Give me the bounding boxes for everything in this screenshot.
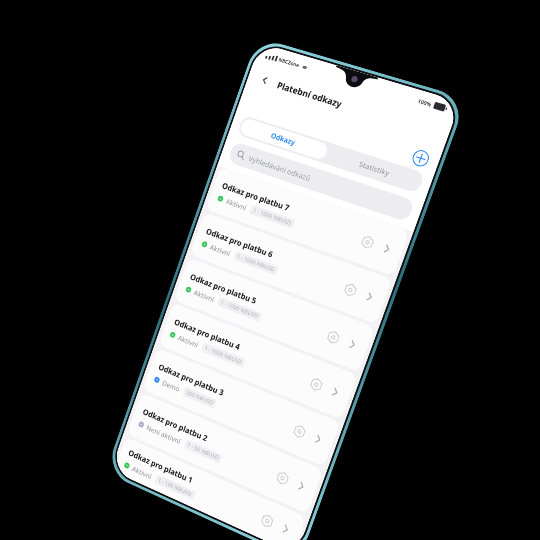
staticText: Aktivní [131,464,153,481]
button[interactable]: Open details [274,517,296,540]
button[interactable]: Vyhledávání odkazů [227,141,415,223]
staticText: 100% [417,97,432,108]
button[interactable]: Odkaz pro platbu 4 [158,303,357,420]
staticText: Odkaz pro platbu 5 [189,271,259,306]
button[interactable]: Back [254,70,275,91]
button[interactable]: Show QR code [304,371,328,397]
button[interactable]: Odkaz pro platbu 3 [142,348,340,467]
staticText: Demo [161,378,181,394]
button[interactable]: Open details [341,332,363,356]
button[interactable]: Odkaz pro platbu 1 [114,437,306,540]
button[interactable]: Show QR code [338,277,363,302]
staticText: Není aktivní [145,422,183,446]
staticText: Odkaz pro platbu 7 [221,180,292,213]
button[interactable]: Odkazy [239,117,329,161]
button[interactable]: Show QR code [287,418,311,444]
button[interactable]: Open details [358,285,381,308]
staticText: Statistiky [358,159,391,178]
button[interactable]: Show QR code [270,465,294,490]
staticText: 1 - 1000 NBUSD [203,344,243,366]
staticText: Aktivní [193,287,216,304]
button[interactable]: Show QR code [321,324,345,349]
button[interactable]: Open details [307,427,329,450]
staticText: Platební odkazy [275,79,344,110]
button[interactable]: Odkaz pro platbu 2 [127,392,323,514]
button[interactable]: Odkaz pro platbu 6 [190,212,392,324]
staticText: 1 - 1000 NBUSD [236,253,276,274]
staticText: 1 - 50 NBUSD [186,441,220,462]
staticText: NBCZone [278,56,301,68]
staticText: Aktivní [225,196,248,212]
button[interactable]: Open details [290,474,312,497]
button[interactable]: Show QR code [355,229,380,254]
button[interactable]: Statistiky [324,143,425,194]
staticText: Odkazy [270,130,297,147]
staticText: Odkaz pro platbu 1 [127,447,195,485]
button[interactable]: Add payment link [410,148,432,169]
button[interactable]: Open details [375,237,398,260]
button[interactable]: Odkaz pro platbu 5 [174,257,375,372]
staticText: Aktivní [209,242,232,258]
staticText: Vyhledávání odkazů [247,153,312,183]
staticText: 1 - 1000 NBUSD [252,206,293,227]
staticText: 1 - 1000 NBUSD [220,298,259,320]
button[interactable]: Open details [324,380,346,403]
staticText: 200 NBUSD [185,388,214,407]
staticText: Odkaz pro platbu 6 [205,225,275,260]
button[interactable]: Odkaz pro platbu 7 [205,166,410,276]
staticText: Odkaz pro platbu 3 [157,361,226,398]
button[interactable]: Show QR code [255,507,279,533]
staticText: Odkaz pro platbu 2 [142,406,210,443]
staticText: Odkaz pro platbu 4 [173,316,242,352]
staticText: 1 - 100 NBUSD [157,476,193,498]
staticText: Aktivní [177,333,200,349]
